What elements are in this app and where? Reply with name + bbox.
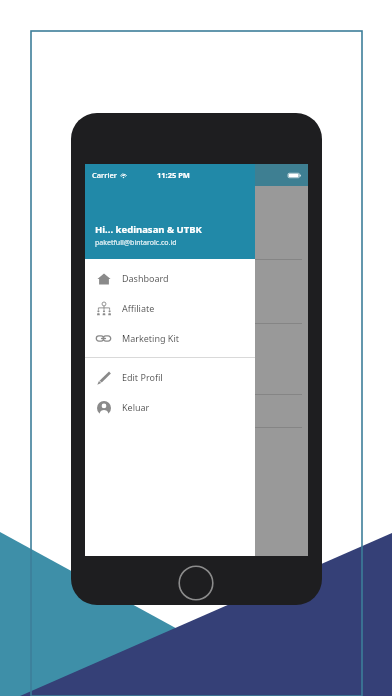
button[interactable]: Video Soal soal bbox=[85, 196, 308, 259]
button[interactable]: Hi... kedinasan & UTBK bbox=[85, 164, 255, 259]
button[interactable]: Edit Profil bbox=[85, 362, 255, 392]
staticText: Affiliate bbox=[122, 302, 155, 314]
button[interactable]: Dashboard bbox=[85, 263, 255, 293]
staticText: Keluar bbox=[122, 401, 150, 413]
other: Wi-Fi bbox=[120, 172, 127, 179]
staticText: Hi... kedinasan & UTBK bbox=[95, 223, 202, 236]
staticText: Dashboard bbox=[122, 272, 169, 284]
button[interactable]: Layout Soal TBI bbox=[85, 260, 308, 323]
button[interactable]: Keluar bbox=[85, 392, 255, 422]
staticText: 11:25 PM bbox=[157, 170, 190, 180]
staticText: Carrier bbox=[92, 170, 117, 180]
staticText: Edit Profil bbox=[122, 371, 163, 383]
staticText: Video Soal soal bbox=[99, 238, 149, 248]
staticText: paketfull@bintarolc.co.id bbox=[95, 238, 177, 248]
button[interactable]: Marketing Kit bbox=[85, 323, 255, 353]
button[interactable]: Affiliate bbox=[85, 293, 255, 323]
staticText: Layout Soal TBI bbox=[99, 302, 150, 312]
other: Battery bbox=[288, 172, 302, 179]
staticText: Marketing Kit bbox=[122, 332, 179, 344]
